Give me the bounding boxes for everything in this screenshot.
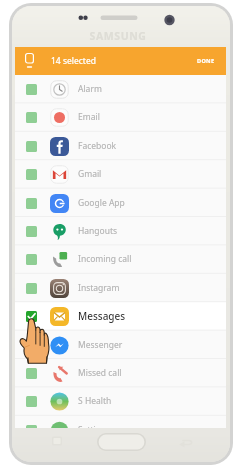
staticText: Alarm: [78, 83, 102, 95]
staticText: S Health: [78, 395, 112, 407]
button[interactable]: Facebook: [15, 132, 226, 160]
button[interactable]: Google App: [15, 189, 226, 217]
button[interactable]: Settings: [15, 416, 226, 428]
staticText: Messages: [78, 309, 126, 323]
staticText: Gmail: [78, 168, 102, 180]
staticText: Missed call: [78, 367, 122, 379]
staticText: Google App: [78, 197, 125, 209]
button[interactable]: S Health: [15, 387, 226, 415]
staticText: Messenger: [78, 339, 123, 351]
staticText: Instagram: [78, 282, 120, 294]
button[interactable]: Messages: [15, 302, 226, 330]
staticText: Settings: [78, 424, 111, 428]
button[interactable]: Incoming call: [15, 245, 226, 273]
button[interactable]: Email: [15, 103, 226, 131]
button[interactable]: Select all: [15, 47, 226, 75]
button[interactable]: Hangouts: [15, 217, 226, 245]
button[interactable]: Select all: [25, 51, 34, 71]
staticText: Incoming call: [78, 253, 132, 265]
staticText: DONE: [197, 57, 215, 65]
staticText: Facebook: [78, 140, 117, 152]
button[interactable]: Alarm: [15, 75, 226, 103]
staticText: Email: [78, 111, 100, 123]
button[interactable]: DONE: [183, 50, 226, 72]
button[interactable]: Gmail: [15, 160, 226, 188]
button[interactable]: Missed call: [15, 359, 226, 387]
staticText: 14 selected: [51, 55, 96, 67]
staticText: Hangouts: [78, 225, 118, 237]
button[interactable]: Messenger: [15, 331, 226, 359]
button[interactable]: Instagram: [15, 274, 226, 302]
staticText: SAMSUNG: [86, 29, 150, 43]
